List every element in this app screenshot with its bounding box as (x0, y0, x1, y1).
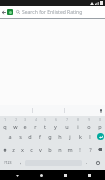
staticText: 3 (24, 118, 26, 122)
button[interactable]: l (85, 130, 95, 143)
staticText: z (12, 146, 15, 153)
button[interactable]: x (18, 143, 27, 156)
button[interactable]: Hide keyboard (11, 170, 23, 180)
other: Navigate up (2, 10, 6, 15)
button[interactable]: a (5, 130, 15, 143)
button[interactable]: g (45, 130, 55, 143)
staticText: k (79, 133, 82, 140)
staticText: , (20, 159, 22, 166)
staticText: s (19, 133, 22, 140)
staticText: 7 (66, 118, 68, 122)
staticText: p (98, 123, 102, 130)
staticText: f (39, 133, 41, 140)
staticText: ?123 (4, 160, 12, 165)
staticText: w (13, 123, 18, 130)
button[interactable]: k (75, 130, 85, 143)
staticText: 4 (35, 118, 37, 122)
button[interactable]: 9 (83, 117, 94, 130)
button[interactable]: Recent apps (59, 170, 71, 180)
button[interactable]: Emoji (91, 156, 105, 169)
button[interactable]: 1 (0, 117, 10, 130)
staticText: u (65, 123, 69, 130)
button[interactable]: ! (75, 143, 85, 156)
staticText: j (69, 133, 71, 140)
staticText: i (77, 123, 79, 130)
staticText: 1 (4, 118, 6, 122)
button[interactable]: Backspace (95, 143, 105, 156)
staticText: t (44, 123, 46, 130)
button[interactable]: . (82, 156, 91, 169)
staticText: e (23, 123, 27, 130)
button[interactable]: 6 (50, 117, 61, 130)
button[interactable]: s (15, 130, 25, 143)
button[interactable]: Enter (95, 130, 105, 143)
button[interactable]: Switch keyboard (83, 170, 95, 180)
staticText: 2 (15, 118, 17, 122)
staticText: ! (79, 146, 81, 153)
staticText: 5 (44, 118, 46, 122)
staticText: 0 (99, 118, 101, 122)
button[interactable]: ?123 (0, 156, 16, 169)
button[interactable]: c (27, 143, 36, 156)
staticText: . (86, 159, 88, 166)
staticText: n (58, 146, 62, 153)
button[interactable]: Navigate up (0, 6, 105, 18)
staticText: l (89, 133, 91, 140)
button[interactable]: z (9, 143, 18, 156)
button[interactable]: 0 (94, 117, 105, 130)
button[interactable]: 5 (40, 117, 50, 130)
staticText: b (48, 146, 52, 153)
button[interactable]: n (55, 143, 65, 156)
button[interactable]: 4 (30, 117, 40, 130)
button[interactable]: ? (85, 143, 95, 156)
staticText: x (21, 146, 24, 153)
button[interactable]: b (45, 143, 55, 156)
button[interactable]: v (36, 143, 45, 156)
staticText: a (8, 133, 12, 140)
staticText: d (28, 133, 32, 140)
staticText: m (67, 146, 73, 153)
other: App icon (7, 9, 13, 15)
staticText: v (39, 146, 42, 153)
button[interactable]: 7 (61, 117, 72, 130)
button[interactable]: j (65, 130, 75, 143)
staticText: q (3, 123, 7, 130)
button[interactable]: h (55, 130, 65, 143)
button[interactable]: , (16, 156, 25, 169)
button[interactable]: Voice input (96, 105, 105, 116)
staticText: 8 (77, 118, 79, 122)
staticText: 9 (88, 118, 90, 122)
staticText: o (87, 123, 91, 130)
button[interactable]: f (35, 130, 45, 143)
staticText: h (58, 133, 62, 140)
staticText: c (30, 146, 33, 153)
button[interactable]: m (65, 143, 75, 156)
button[interactable]: Shift (0, 143, 9, 156)
staticText: g (48, 133, 52, 140)
staticText: 6 (55, 118, 57, 122)
button[interactable]: 3 (20, 117, 30, 130)
staticText: Search for Enlisted Rating (22, 9, 83, 16)
staticText: y (54, 123, 57, 130)
button[interactable]: d (25, 130, 35, 143)
staticText: r (34, 123, 37, 130)
button[interactable]: 2 (10, 117, 20, 130)
button[interactable]: Home (35, 170, 47, 180)
staticText: ? (89, 146, 92, 153)
button[interactable]: 8 (72, 117, 83, 130)
